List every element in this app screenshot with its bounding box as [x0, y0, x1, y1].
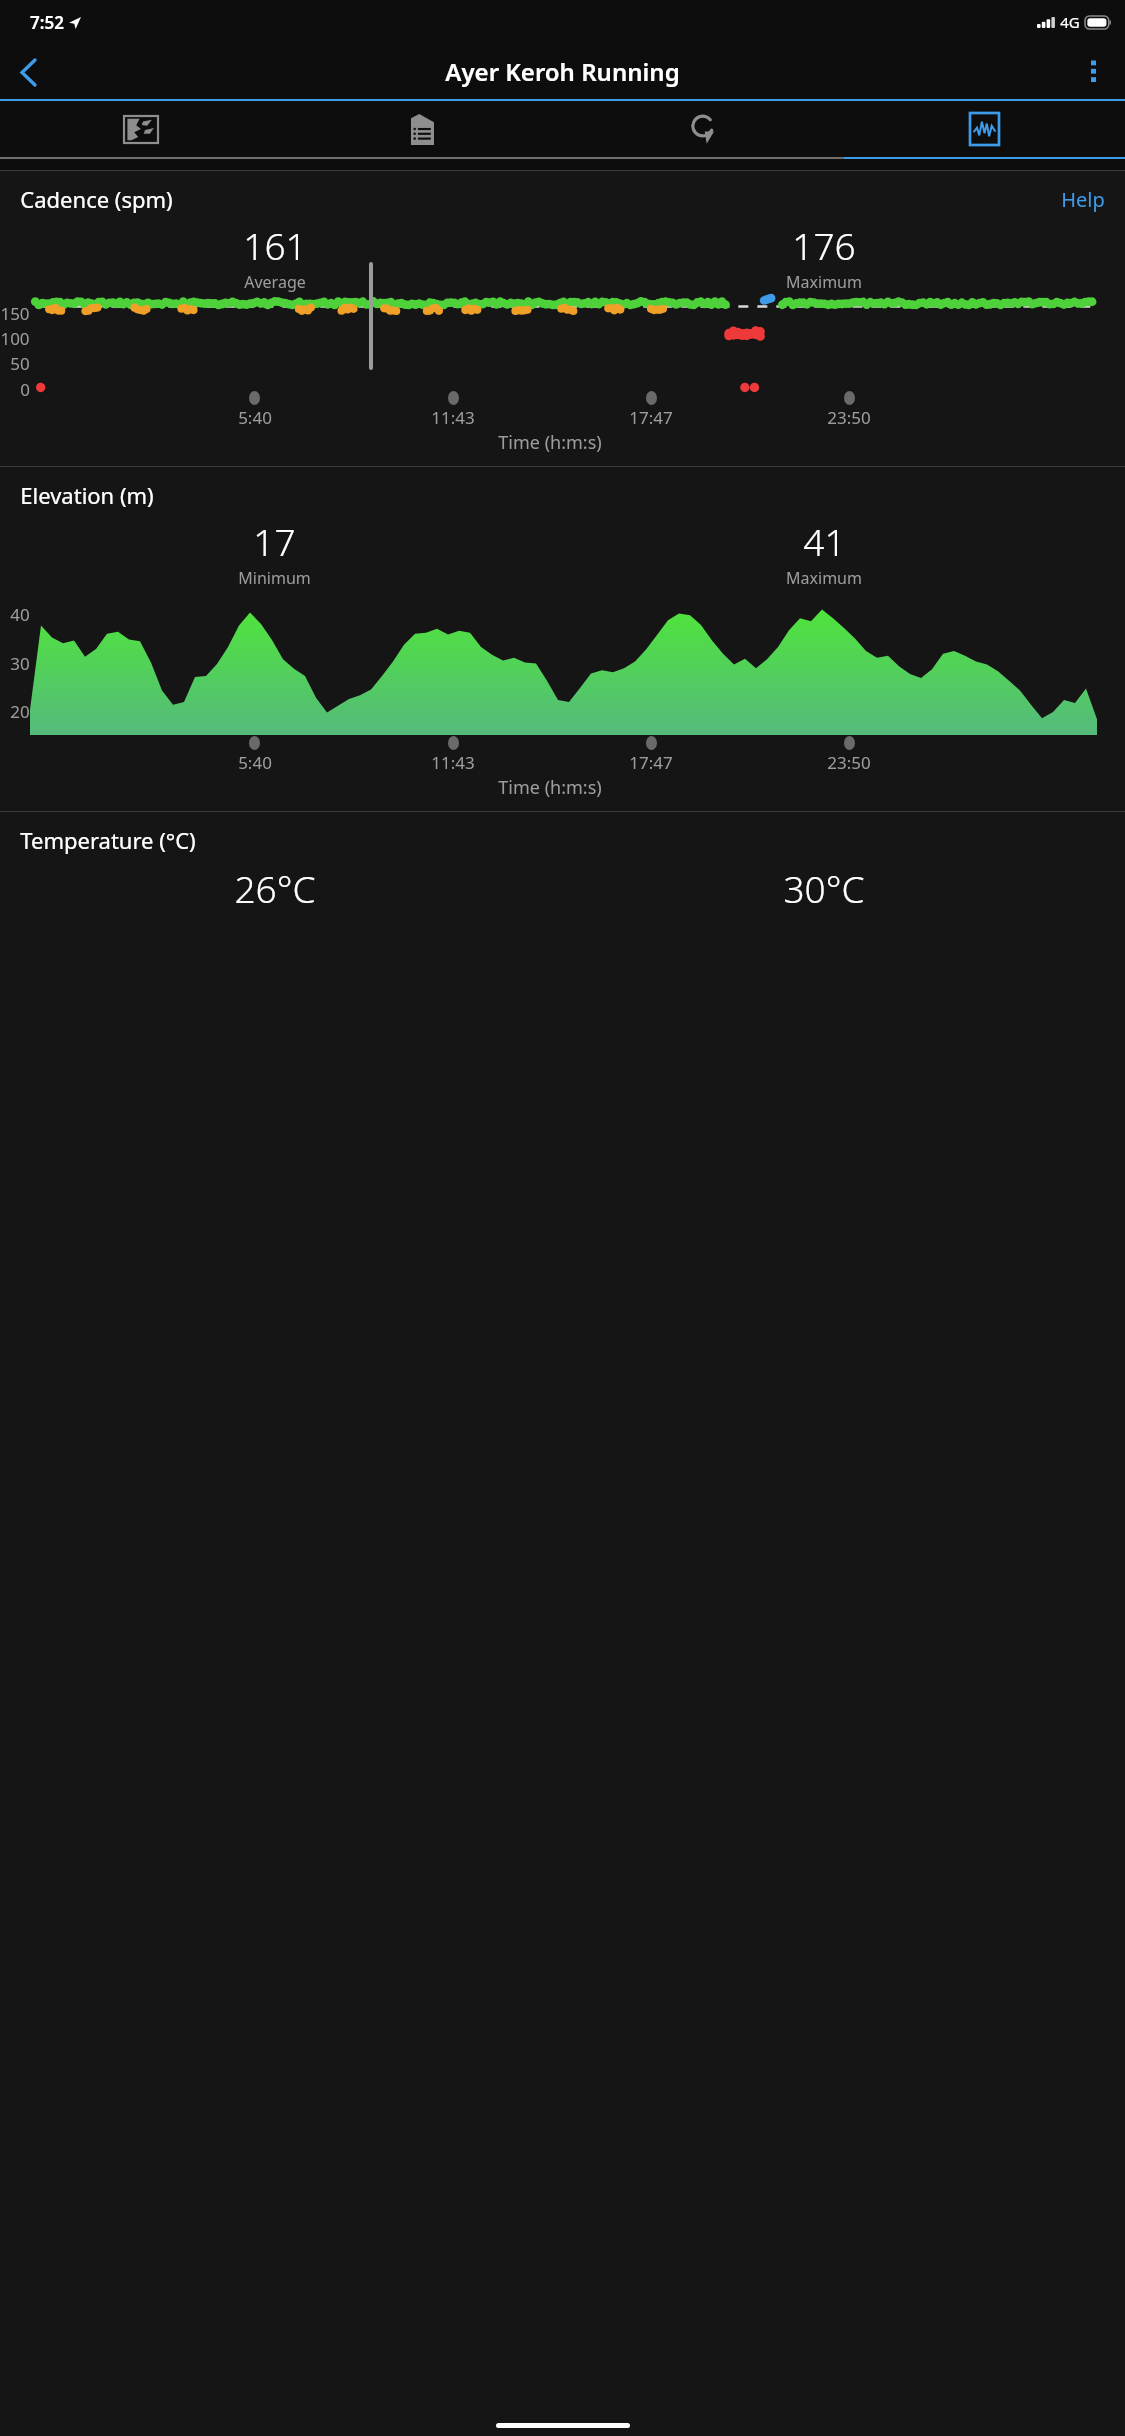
button[interactable]: Details: [282, 101, 563, 157]
staticText: 30°C: [783, 863, 865, 913]
staticText: 17: [253, 516, 296, 566]
staticText: 5:40: [238, 406, 272, 429]
staticText: 5:40: [238, 751, 272, 774]
staticText: 161: [243, 220, 307, 270]
button[interactable]: Map: [0, 101, 282, 157]
staticText: 41: [803, 516, 846, 566]
staticText: 176: [792, 220, 856, 270]
staticText: 0: [20, 378, 30, 401]
staticText: 50: [10, 352, 30, 375]
staticText: Elevation (m): [20, 480, 154, 510]
staticText: Maximum: [786, 271, 862, 293]
staticText: 20: [10, 700, 30, 723]
staticText: Average: [244, 271, 306, 293]
staticText: Minimum: [238, 567, 311, 589]
staticText: 23:50: [827, 751, 871, 774]
staticText: Time (h:m:s): [498, 430, 602, 455]
staticText: 17:47: [629, 751, 673, 774]
staticText: 40: [10, 603, 30, 626]
staticText: 30: [10, 652, 30, 675]
staticText: Ayer Keroh Running: [445, 55, 680, 88]
staticText: Cadence (spm): [20, 184, 173, 214]
staticText: Help: [1061, 186, 1105, 213]
staticText: 7:52: [30, 11, 64, 34]
staticText: 150: [0, 302, 30, 325]
staticText: Time (h:m:s): [498, 775, 602, 800]
button[interactable]: Back: [2, 46, 54, 98]
staticText: Temperature (°C): [20, 825, 196, 855]
staticText: 26°C: [234, 863, 316, 913]
staticText: 17:47: [629, 406, 673, 429]
button[interactable]: Help: [1061, 186, 1105, 213]
staticText: 23:50: [827, 406, 871, 429]
button[interactable]: Laps: [563, 101, 844, 157]
button[interactable]: Charts: [844, 101, 1125, 157]
staticText: 4G: [1060, 12, 1080, 32]
button[interactable]: More options: [1067, 46, 1119, 98]
staticText: Maximum: [786, 567, 862, 589]
staticText: 11:43: [431, 406, 475, 429]
staticText: 11:43: [431, 751, 475, 774]
staticText: 100: [0, 327, 30, 350]
